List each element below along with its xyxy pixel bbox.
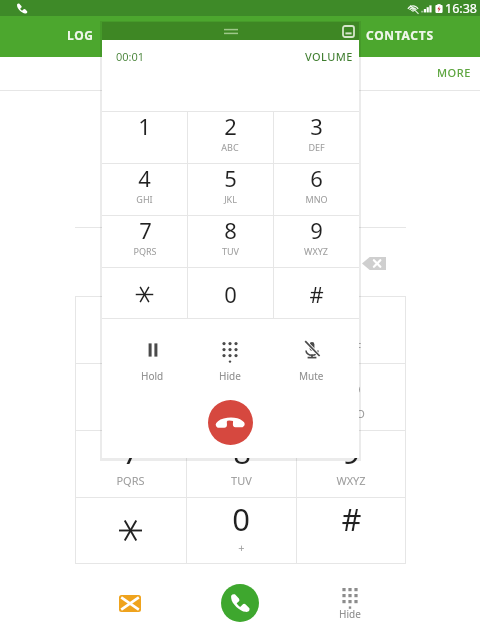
button[interactable]: 1	[102, 111, 187, 163]
staticText: +	[238, 540, 245, 554]
staticText: DEF	[341, 339, 361, 353]
button[interactable]: MORE	[433, 61, 475, 84]
button[interactable]: 6	[273, 163, 359, 215]
staticText: LOG	[67, 27, 94, 43]
staticText: 8	[224, 215, 237, 245]
staticText: 7	[122, 431, 140, 473]
staticText: 1	[122, 297, 140, 339]
button[interactable]: 8	[187, 215, 273, 267]
staticText: KEYPAD	[215, 27, 266, 43]
staticText: PQRS	[116, 473, 145, 487]
button[interactable]: Hide	[209, 337, 251, 386]
button[interactable]: Mute	[289, 337, 334, 386]
button[interactable]: 2	[186, 296, 296, 363]
button[interactable]: 6	[296, 363, 406, 430]
staticText: 9	[342, 431, 360, 473]
staticText: 5	[232, 364, 250, 406]
staticText: Mute	[299, 369, 324, 383]
staticText: Hold	[141, 369, 164, 383]
staticText: PQRS	[133, 245, 157, 257]
staticText: 9	[310, 215, 323, 245]
button[interactable]: 5	[187, 163, 273, 215]
staticText: 16:38	[445, 0, 477, 16]
staticText: 5	[224, 163, 237, 193]
staticText: 8	[233, 431, 251, 473]
button[interactable]: 0	[186, 497, 296, 564]
button[interactable]: 3	[273, 111, 359, 163]
staticText: #	[309, 279, 324, 309]
button[interactable]: Hide	[295, 570, 405, 636]
button[interactable]: #	[273, 267, 359, 319]
button[interactable]: End call	[208, 400, 253, 445]
button[interactable]: 1	[75, 296, 186, 363]
staticText: JKL	[233, 406, 249, 420]
button[interactable]: 0	[187, 267, 273, 319]
staticText: 00:01	[116, 49, 145, 64]
staticText: TUV	[222, 245, 239, 257]
button[interactable]: Minimize	[343, 26, 354, 37]
button[interactable]: 4	[75, 363, 186, 430]
button[interactable]: Backspace	[362, 257, 386, 270]
staticText: MNO	[338, 406, 365, 420]
staticText: 3	[342, 297, 360, 339]
staticText: 6	[343, 364, 361, 406]
staticText: 3	[310, 111, 323, 141]
button[interactable]: CONTACTS	[320, 16, 480, 54]
staticText: 2	[232, 297, 250, 339]
button[interactable]: 8	[186, 430, 296, 497]
button[interactable]: Call	[185, 570, 295, 636]
staticText: 6	[310, 163, 323, 193]
staticText: MNO	[305, 193, 328, 205]
staticText: ABC	[230, 339, 252, 353]
staticText: 2	[224, 111, 237, 141]
staticText: 1	[138, 111, 151, 141]
staticText: CONTACTS	[366, 27, 434, 43]
staticText: GHI	[136, 193, 153, 205]
button[interactable]	[102, 267, 187, 319]
button[interactable]: Message	[75, 570, 185, 636]
staticText: 0	[232, 498, 250, 540]
button[interactable]: 7	[102, 215, 187, 267]
staticText: MORE	[437, 65, 471, 80]
staticText: #	[341, 498, 362, 540]
staticText: 4	[138, 163, 151, 193]
button[interactable]: Hold	[131, 337, 174, 386]
button[interactable]: 3	[296, 296, 406, 363]
button[interactable]: 9	[273, 215, 359, 267]
staticText: VOLUME	[305, 49, 353, 64]
button[interactable]: VOLUME	[301, 45, 357, 68]
staticText: WXYZ	[336, 473, 366, 487]
button[interactable]: 5	[186, 363, 296, 430]
button[interactable]: LOG	[0, 16, 160, 54]
button[interactable]: 2	[187, 111, 273, 163]
staticText: WXYZ	[304, 245, 328, 257]
staticText: TUV	[231, 473, 252, 487]
staticText: JKL	[224, 193, 237, 205]
button[interactable]: 9	[296, 430, 406, 497]
staticText: Hide	[339, 607, 361, 621]
staticText: 7	[139, 215, 152, 245]
button[interactable]: 7	[75, 430, 186, 497]
staticText: DEF	[308, 141, 325, 153]
staticText: ABC	[221, 141, 239, 153]
staticText: 0	[224, 279, 237, 309]
button[interactable]: 4	[102, 163, 187, 215]
button[interactable]: KEYPAD	[160, 16, 320, 54]
button[interactable]: #	[296, 497, 406, 564]
staticText: Hide	[219, 369, 241, 383]
button[interactable]	[75, 497, 186, 564]
